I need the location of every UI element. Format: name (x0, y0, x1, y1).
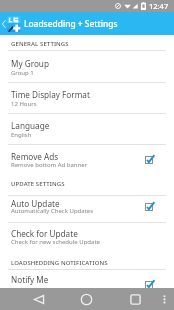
staticText: Language (11, 120, 50, 131)
staticText: UPDATE SETTINGS (11, 180, 65, 188)
button[interactable]: Back (20, 288, 57, 310)
button[interactable]: Auto Update (0, 195, 174, 222)
staticText: Notify Me (11, 274, 49, 285)
staticText: 12 Hours (11, 100, 37, 108)
button[interactable]: More options (156, 288, 173, 310)
staticText: Time Display Format (11, 89, 90, 100)
button[interactable]: Home (68, 288, 105, 310)
button[interactable]: Language (0, 113, 174, 144)
staticText: Check for Update (11, 228, 78, 239)
staticText: Check for new schedule Update (11, 238, 100, 246)
staticText: Automatically Check Updates (11, 207, 94, 215)
staticText: LOADSHEDDING NOTIFICATIONS (11, 259, 108, 267)
staticText: 12:47 (149, 1, 169, 11)
button[interactable]: Time Display Format (0, 82, 174, 113)
staticText: Remove Ads (11, 151, 59, 162)
staticText: Loadsedding + Settings (24, 18, 118, 29)
staticText: My Group (11, 58, 49, 69)
button[interactable]: Notify Me (0, 269, 174, 300)
staticText: Auto Update (11, 198, 60, 209)
button[interactable]: Check for Update (0, 222, 174, 250)
staticText: Remove bottom Ad banner (11, 161, 88, 169)
button[interactable]: Navigate up (0, 12, 7, 35)
staticText: Group 1 (11, 69, 34, 77)
staticText: GENERAL SETTINGS (11, 40, 69, 48)
button[interactable]: My Group (0, 50, 174, 82)
staticText: English (11, 131, 32, 139)
button[interactable]: Recents (117, 288, 154, 310)
button[interactable]: Remove Ads (0, 144, 174, 176)
